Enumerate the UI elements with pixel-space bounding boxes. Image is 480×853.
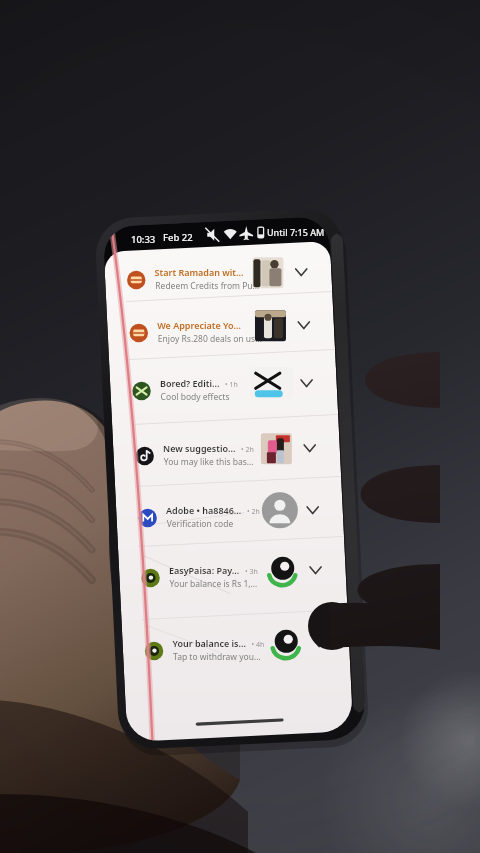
other: Photo of a hand holding a phone showing … [0,0,480,853]
